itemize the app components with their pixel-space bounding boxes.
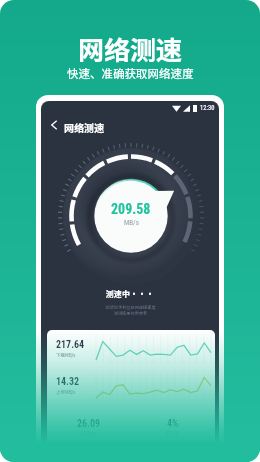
staticText: 网络测速 bbox=[78, 30, 183, 68]
staticText: 测速中··· bbox=[106, 288, 154, 300]
staticText: 209.58 bbox=[111, 201, 151, 217]
staticText: 4% bbox=[167, 418, 179, 430]
staticText: MB/s bbox=[124, 219, 139, 227]
staticText: 下载MB/s bbox=[56, 352, 76, 359]
staticText: 217.64 bbox=[56, 339, 85, 351]
staticText: 网络测速 bbox=[64, 120, 104, 134]
staticText: 12:30 bbox=[200, 104, 215, 112]
staticText: 丢包率 bbox=[166, 430, 180, 437]
staticText: 14.32 bbox=[56, 376, 80, 388]
button[interactable]: Back bbox=[51, 118, 103, 132]
staticText: 延迟ms bbox=[81, 430, 97, 437]
staticText: 测试您手机互联网连接速度 测试结果仅供参考 bbox=[105, 304, 156, 316]
staticText: 上传MB/s bbox=[56, 389, 76, 396]
staticText: 快速、准确获取网络速度 bbox=[67, 65, 194, 82]
staticText: 26.09 bbox=[77, 418, 101, 430]
